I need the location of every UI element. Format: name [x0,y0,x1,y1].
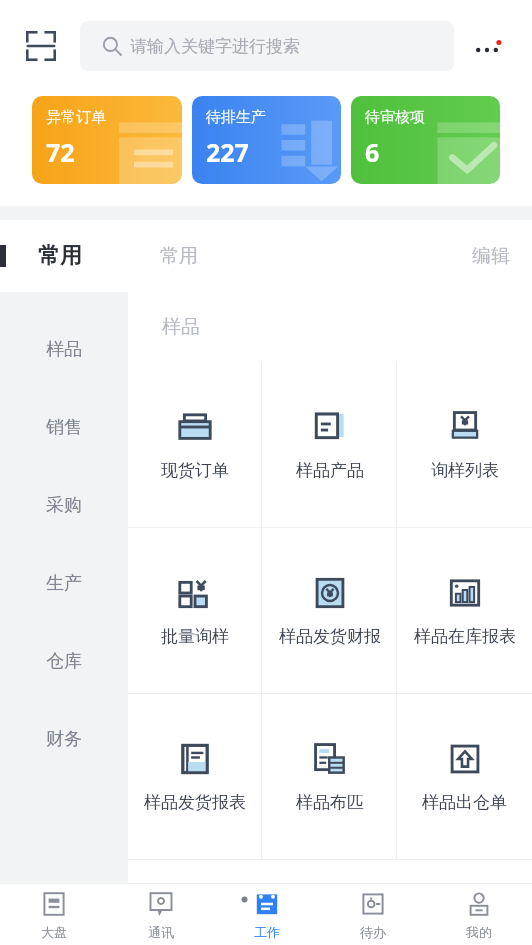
button[interactable]: 工作 [214,883,320,945]
staticText: 编辑 [472,244,510,268]
button[interactable]: 样品发货财报 [262,528,397,693]
button[interactable]: 样品产品 [262,362,397,527]
staticText: 仓库 [46,650,82,673]
button[interactable]: 我的 [426,883,532,945]
button[interactable]: 财务 [0,700,128,778]
button[interactable]: 编辑 [472,244,510,268]
button[interactable]: 待审核项 [351,96,500,184]
staticText: 样品出仓单 [422,792,507,813]
button[interactable]: 请输入关键字进行搜索 [80,21,454,71]
staticText: 询样列表 [431,460,499,481]
button[interactable]: 仓库 [0,622,128,700]
staticText: 异常订单 [46,108,106,127]
button[interactable]: 批量询样 [128,528,262,693]
button[interactable]: Scan [18,23,64,69]
staticText: 待排生产 [206,108,266,127]
staticText: 请输入关键字进行搜索 [130,36,300,57]
button[interactable]: 大盘 [0,883,107,945]
button[interactable]: 销售 [0,388,128,466]
button[interactable]: 样品发货报表 [128,694,262,859]
button[interactable]: 通讯 [107,883,214,945]
button[interactable]: 样品出仓单 [397,694,532,859]
button[interactable]: 常用 [160,244,198,268]
staticText: 样品布匹 [296,792,364,813]
button[interactable]: More [468,23,514,69]
staticText: 227 [206,135,249,169]
staticText: 待审核项 [365,108,425,127]
staticText: 样品 [46,338,82,361]
staticText: 生产 [46,572,82,595]
button[interactable]: 样品布匹 [262,694,397,859]
button[interactable]: 待排生产 [192,96,341,184]
button[interactable]: 采购 [0,466,128,544]
button[interactable]: 样品 [0,310,128,388]
staticText: 72 [46,135,75,169]
staticText: 常用 [38,242,82,270]
staticText: 批量询样 [161,626,229,647]
staticText: 采购 [46,494,82,517]
staticText: 样品发货财报 [279,626,381,647]
staticText: 工作 [254,924,280,940]
staticText: 常用 [160,244,198,268]
staticText: 财务 [46,728,82,751]
button[interactable]: 询样列表 [397,362,532,527]
button[interactable]: 现货订单 [128,362,262,527]
staticText: 大盘 [41,924,67,940]
staticText: 销售 [46,416,82,439]
staticText: 样品发货报表 [144,792,246,813]
button[interactable]: 生产 [0,544,128,622]
staticText: 样品产品 [296,460,364,481]
staticText: 待办 [360,924,386,940]
staticText: 通讯 [148,924,174,940]
button[interactable]: 待办 [320,883,426,945]
button[interactable]: 样品在库报表 [397,528,532,693]
staticText: 样品 [162,315,200,339]
staticText: 样品在库报表 [414,626,516,647]
staticText: 我的 [466,924,492,940]
staticText: 6 [365,135,380,169]
button[interactable]: 异常订单 [32,96,182,184]
staticText: 现货订单 [161,460,229,481]
